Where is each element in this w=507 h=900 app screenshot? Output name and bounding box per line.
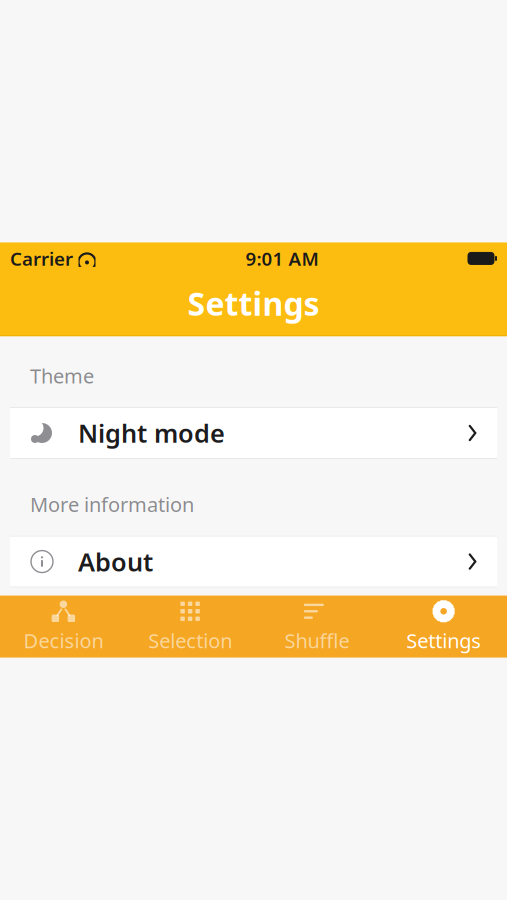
staticText: Night mode: [78, 416, 225, 450]
staticText: About: [78, 545, 153, 578]
button[interactable]: Decision: [0, 596, 127, 658]
staticText: Shuffle: [284, 627, 349, 654]
button[interactable]: Night mode: [10, 407, 497, 459]
staticText: Theme: [30, 362, 94, 389]
button[interactable]: Selection: [127, 596, 254, 658]
button[interactable]: About: [10, 536, 497, 588]
button[interactable]: Shuffle: [253, 596, 380, 658]
staticText: Carrier: [10, 246, 73, 271]
staticText: Selection: [148, 627, 232, 654]
staticText: 9:01 AM: [245, 246, 318, 271]
staticText: Decision: [23, 627, 103, 654]
staticText: More information: [30, 491, 194, 518]
staticText: Settings: [187, 282, 319, 325]
button[interactable]: Settings: [380, 596, 507, 658]
staticText: Settings: [406, 627, 481, 654]
